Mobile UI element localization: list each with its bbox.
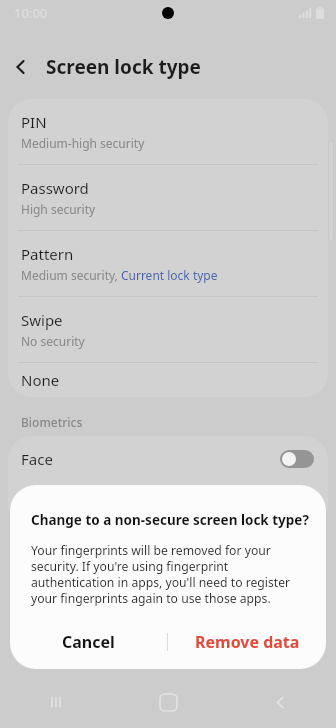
button[interactable]: Back bbox=[0, 46, 42, 88]
button[interactable]: Cancel bbox=[10, 615, 167, 669]
button[interactable]: Swipe bbox=[8, 297, 328, 362]
staticText: None bbox=[21, 370, 60, 390]
staticText: No security bbox=[21, 333, 85, 349]
staticText: Medium security, Current lock type bbox=[21, 267, 218, 283]
staticText: Cancel bbox=[62, 631, 115, 653]
button[interactable]: Pattern bbox=[8, 231, 328, 296]
staticText: Screen lock type bbox=[46, 54, 201, 80]
staticText: Pattern bbox=[21, 244, 74, 264]
button[interactable]: Password bbox=[8, 165, 328, 230]
staticText: Change to a non-secure screen lock type? bbox=[31, 511, 309, 529]
button[interactable]: Face toggle bbox=[280, 450, 314, 468]
staticText: Your fingerprints will be removed for yo… bbox=[31, 542, 308, 606]
staticText: 10:00 bbox=[14, 4, 48, 22]
button[interactable]: PIN bbox=[8, 99, 328, 164]
button[interactable]: Face bbox=[8, 436, 328, 482]
staticText: Medium-high security bbox=[21, 135, 145, 151]
staticText: High security bbox=[21, 201, 96, 217]
staticText: PIN bbox=[21, 112, 47, 132]
button[interactable]: None bbox=[8, 363, 328, 397]
button[interactable]: Remove data bbox=[168, 615, 326, 669]
staticText: Swipe bbox=[21, 310, 63, 330]
staticText: Face bbox=[21, 449, 53, 469]
staticText: Remove data bbox=[195, 631, 300, 653]
staticText: Biometrics bbox=[21, 414, 83, 430]
staticText: Password bbox=[21, 178, 89, 198]
